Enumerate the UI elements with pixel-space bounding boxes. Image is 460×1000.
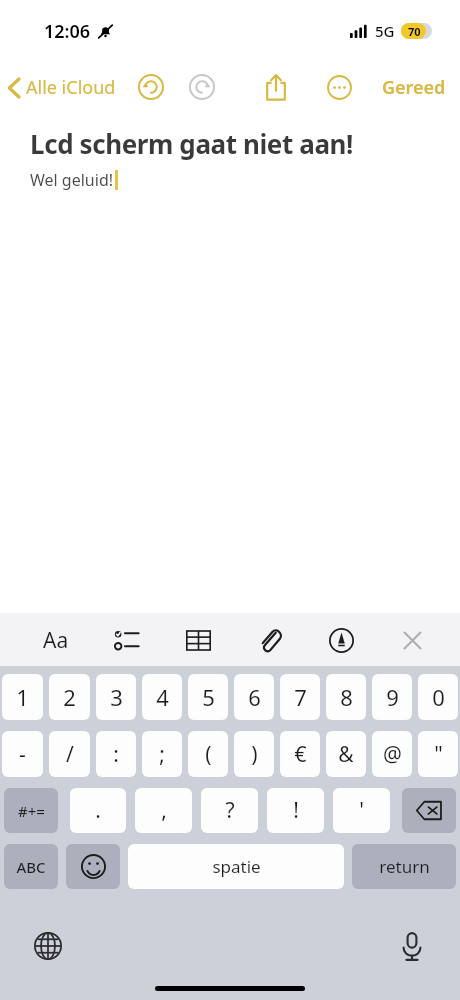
button[interactable]: (	[188, 731, 228, 777]
staticText: ?	[225, 796, 235, 825]
button[interactable]: Text format	[34, 618, 78, 662]
button[interactable]: 4	[142, 674, 182, 720]
button[interactable]: Attach	[248, 618, 292, 662]
button[interactable]: spatie	[128, 844, 344, 889]
button[interactable]: &	[326, 731, 366, 777]
staticText: 8	[340, 682, 353, 712]
button[interactable]: ?	[201, 788, 258, 833]
staticText: ,	[161, 796, 167, 825]
staticText: 6	[248, 682, 261, 712]
button[interactable]: Checklist	[105, 618, 149, 662]
staticText: @	[383, 740, 402, 769]
staticText: .	[95, 796, 101, 825]
button[interactable]: .	[70, 788, 126, 833]
button[interactable]: :	[96, 731, 136, 777]
button[interactable]: Share	[258, 69, 294, 105]
staticText: /	[66, 740, 74, 769]
button[interactable]: Emoji	[66, 844, 120, 889]
button[interactable]: 5	[188, 674, 228, 720]
staticText: #+=	[18, 801, 45, 821]
button[interactable]: Table	[176, 618, 220, 662]
button[interactable]: #+=	[4, 788, 58, 833]
button[interactable]: Close keyboard	[390, 618, 434, 662]
staticText: spatie	[212, 855, 261, 878]
button[interactable]: Change keyboard language	[26, 924, 70, 968]
button[interactable]: @	[372, 731, 412, 777]
button[interactable]: ;	[142, 731, 182, 777]
staticText: Gereed	[382, 75, 446, 100]
staticText: 7	[294, 682, 307, 712]
button[interactable]: Backspace	[402, 788, 456, 833]
staticText: 3	[110, 682, 123, 712]
staticText: Alle iCloud	[26, 75, 116, 100]
button[interactable]: "	[418, 731, 458, 777]
staticText: )	[251, 740, 258, 769]
button[interactable]: ,	[135, 788, 192, 833]
staticText: Lcd scherm gaat niet aan!	[30, 126, 354, 161]
button[interactable]: Markup	[319, 618, 363, 662]
button[interactable]: 3	[96, 674, 136, 720]
button[interactable]: 7	[280, 674, 320, 720]
staticText: (	[205, 740, 212, 769]
staticText: "	[434, 740, 443, 769]
staticText: Wel geluid!	[30, 169, 114, 191]
staticText: return	[379, 855, 430, 878]
button[interactable]: 8	[326, 674, 366, 720]
button[interactable]: Redo	[185, 70, 219, 104]
staticText: Aa	[43, 626, 69, 655]
staticText: 5	[202, 682, 215, 712]
button[interactable]: !	[267, 788, 324, 833]
button[interactable]: 9	[372, 674, 412, 720]
button[interactable]: return	[352, 844, 456, 889]
button[interactable]: '	[333, 788, 390, 833]
button[interactable]: -	[2, 731, 43, 777]
staticText: 70	[408, 24, 421, 39]
button[interactable]: ABC	[4, 844, 58, 889]
staticText: :	[113, 740, 119, 769]
staticText: ;	[159, 740, 165, 769]
button[interactable]: 6	[234, 674, 274, 720]
button[interactable]: /	[49, 731, 90, 777]
button[interactable]: 0	[418, 674, 458, 720]
staticText: 12:06	[44, 19, 91, 44]
staticText: -	[19, 740, 26, 769]
button[interactable]: Alle iCloud	[0, 69, 122, 106]
staticText: !	[293, 796, 299, 825]
button[interactable]: Undo	[134, 70, 168, 104]
staticText: '	[359, 796, 364, 825]
button[interactable]: 1	[2, 674, 43, 720]
staticText: 0	[432, 682, 445, 712]
staticText: 2	[63, 682, 76, 712]
button[interactable]: 2	[49, 674, 90, 720]
button[interactable]: €	[280, 731, 320, 777]
button[interactable]: More options	[322, 70, 356, 104]
staticText: 9	[386, 682, 399, 712]
button[interactable]: Gereed	[368, 69, 460, 106]
staticText: 4	[156, 682, 169, 712]
staticText: &	[338, 740, 354, 769]
button[interactable]: Dictate	[390, 924, 434, 968]
button[interactable]: )	[234, 731, 274, 777]
staticText: 1	[16, 682, 29, 712]
staticText: ABC	[16, 857, 46, 877]
staticText: €	[294, 740, 307, 769]
staticText: 5G	[375, 21, 395, 41]
